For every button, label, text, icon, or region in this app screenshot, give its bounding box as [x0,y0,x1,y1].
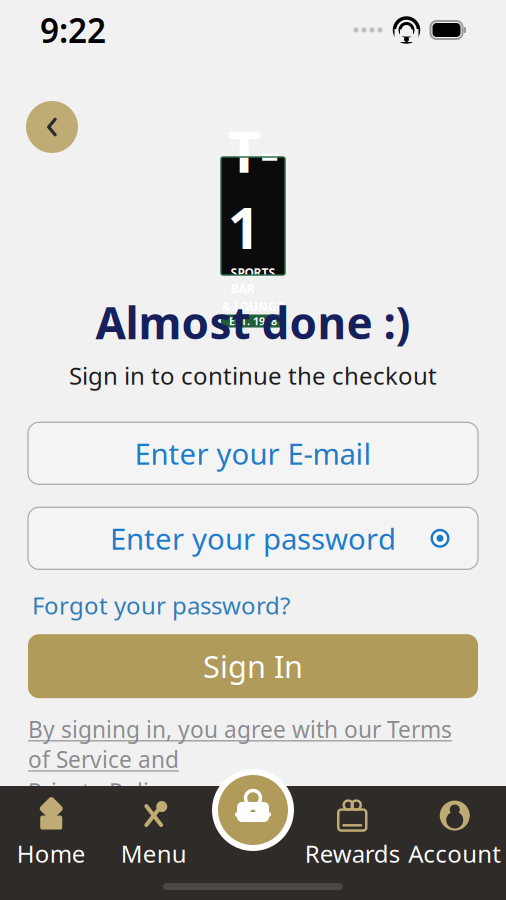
staticText: Enter your password [110,519,396,558]
button[interactable]: Enter your password [28,507,478,569]
staticText: Menu [121,838,187,869]
staticText: Sign in with Apple [152,832,384,869]
button[interactable]: Rewards [301,795,403,875]
button[interactable]: By signing in, you agree with our Terms … [28,714,452,806]
staticText: Private Policy [28,776,172,806]
staticText: Sign In [203,646,303,686]
button[interactable]: Sign In [28,634,478,698]
staticText: & LOUNGE [222,299,284,314]
staticText: Rewards [305,838,400,869]
button[interactable]: Forgot your password? [32,589,290,621]
staticText: 9:22 [40,8,106,52]
button[interactable]: Back [26,101,78,153]
staticText: EST. 1998 [229,314,277,328]
staticText: Forgot your password? [32,589,290,621]
button[interactable]: Cart [212,769,294,851]
button[interactable]: Sign in with Apple [28,820,478,880]
button[interactable]: Account [403,795,506,875]
button[interactable]: Menu [102,795,205,875]
button[interactable]: Home [0,795,102,875]
staticText: SPORTS BAR [230,265,275,297]
button[interactable]: Enter your E-mail [28,422,478,484]
staticText: By signing in, you agree with our Terms … [28,714,452,774]
staticText: Home [17,838,86,869]
staticText: Sign in to continue the checkout [69,359,437,391]
staticText: Enter your E-mail [134,434,371,473]
staticText: T1 [227,112,278,265]
staticText: Account [408,838,501,869]
staticText: Almost done :) [95,293,410,351]
